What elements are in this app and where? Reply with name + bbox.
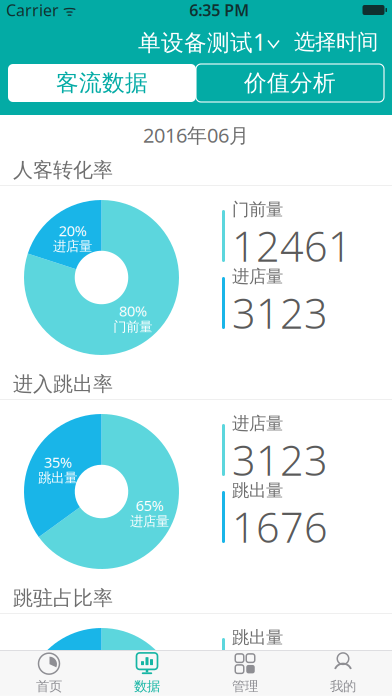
staticText: 管理 xyxy=(232,678,258,695)
staticText: ᯤ xyxy=(59,0,76,20)
staticText: 跳出量 xyxy=(38,470,77,486)
button[interactable]: 我的 xyxy=(294,650,392,696)
staticText: 进店量 xyxy=(53,238,92,255)
button[interactable]: 首页 xyxy=(0,650,98,696)
staticText: 我的 xyxy=(330,678,356,695)
staticText: 6:35 PM xyxy=(189,0,249,21)
staticText: 门前量 xyxy=(113,319,152,335)
button[interactable]: 单设备测试1 xyxy=(132,20,285,64)
staticText: 跳出量 xyxy=(232,480,283,501)
staticText: 人客转化率 xyxy=(13,158,113,182)
staticText: 12461 xyxy=(232,218,352,273)
staticText: 价值分析 xyxy=(244,69,336,97)
staticText: 首页 xyxy=(36,678,62,695)
button[interactable]: 管理 xyxy=(196,650,294,696)
button[interactable]: 选择时间 xyxy=(288,20,384,64)
staticText: 客流数据 xyxy=(56,69,148,97)
button[interactable]: 价值分析 xyxy=(196,64,384,102)
staticText: 进店量 xyxy=(232,413,283,434)
staticText: 2016年06月 xyxy=(143,122,249,148)
button[interactable]: 数据 xyxy=(98,650,196,696)
staticText: 跳出量 xyxy=(232,627,283,648)
staticText: 进店量 xyxy=(130,513,169,529)
button[interactable]: 客流数据 xyxy=(8,64,196,102)
staticText: 20% xyxy=(59,221,87,240)
staticText: 进店量 xyxy=(232,266,283,287)
staticText: 1676 xyxy=(232,499,328,554)
staticText: 35% xyxy=(44,452,72,472)
staticText: 3123 xyxy=(232,285,328,340)
staticText: 单设备测试1 xyxy=(138,27,266,57)
staticText: 跳驻占比率 xyxy=(13,586,113,610)
staticText: 80% xyxy=(119,301,147,321)
staticText: Carrier xyxy=(6,0,59,21)
staticText: 选择时间 xyxy=(294,29,378,55)
staticText: 30% xyxy=(48,660,76,679)
staticText: 数据 xyxy=(134,678,160,695)
staticText: 3123 xyxy=(232,432,328,487)
staticText: 门前量 xyxy=(232,199,283,220)
staticText: 驻留量 xyxy=(42,677,81,693)
staticText: 65% xyxy=(135,496,163,515)
staticText: 进入跳出率 xyxy=(13,372,113,396)
staticText: 1676 xyxy=(232,646,328,696)
